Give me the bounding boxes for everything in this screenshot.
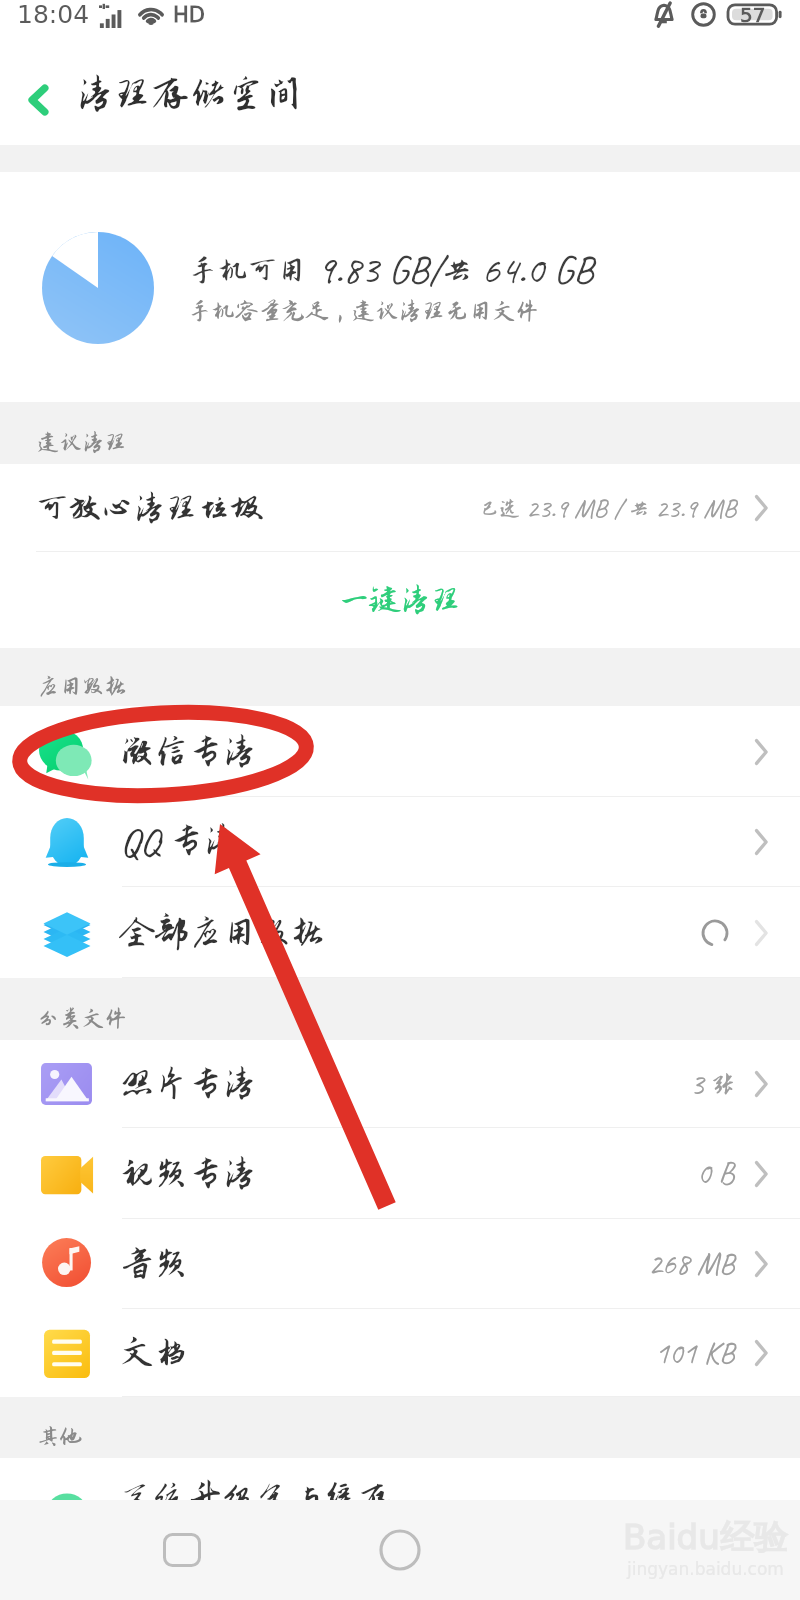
button[interactable]: Home	[360, 1510, 440, 1590]
staticText: 照片专清	[120, 1065, 257, 1103]
button[interactable]: 系统升级包与缓存	[0, 1458, 800, 1548]
staticText: 手机可用 9.83 GB/共 64.0 GB	[188, 244, 594, 295]
staticText: 建议清理	[37, 430, 128, 455]
button[interactable]: 音频	[0, 1219, 800, 1309]
button[interactable]: 文档	[0, 1309, 800, 1397]
button[interactable]: 全部应用数据	[0, 887, 800, 978]
staticText: 已选 23.9 MB / 共 23.9 MB	[480, 491, 737, 525]
button[interactable]: 微信专清	[0, 706, 800, 797]
button[interactable]: 视频专清	[0, 1128, 800, 1219]
staticText: 一键清理	[339, 583, 462, 617]
button[interactable]: 可放心清理垃圾	[0, 464, 800, 552]
button[interactable]: 一键清理	[0, 552, 800, 648]
button[interactable]: Back	[0, 55, 78, 145]
staticText: 其他	[37, 1424, 83, 1449]
staticText: jingyan.baidu.com	[627, 1559, 784, 1579]
staticText: QQ 专清	[120, 817, 238, 867]
staticText: 57	[740, 3, 766, 26]
staticText: Baidu经验	[623, 1516, 788, 1559]
staticText: 3 张	[690, 1065, 735, 1104]
staticText: 清理存储空间	[76, 73, 303, 115]
staticText: 系统升级包与缓存	[120, 1480, 394, 1518]
staticText: 分类文件	[37, 1006, 128, 1031]
staticText: 268 MB	[648, 1245, 735, 1284]
staticText: 音频	[120, 1245, 189, 1283]
staticText: 全部应用数据	[120, 914, 326, 952]
button[interactable]: Recent apps	[142, 1510, 222, 1590]
staticText: 18:04	[17, 0, 90, 29]
staticText: 微信专清	[120, 733, 257, 771]
staticText: 0 B	[697, 1154, 735, 1193]
staticText: 手机容量充足，建议清理无用文件	[188, 298, 540, 324]
staticText: 文档	[120, 1334, 189, 1372]
staticText: 应用数据	[37, 674, 128, 699]
staticText: 可放心清理垃圾	[36, 490, 263, 526]
staticText: 视频专清	[120, 1155, 257, 1193]
staticText: HD	[173, 3, 205, 27]
button[interactable]: QQ 专清	[0, 797, 800, 887]
button[interactable]: 照片专清	[0, 1040, 800, 1128]
staticText: 101 KB	[655, 1334, 735, 1373]
